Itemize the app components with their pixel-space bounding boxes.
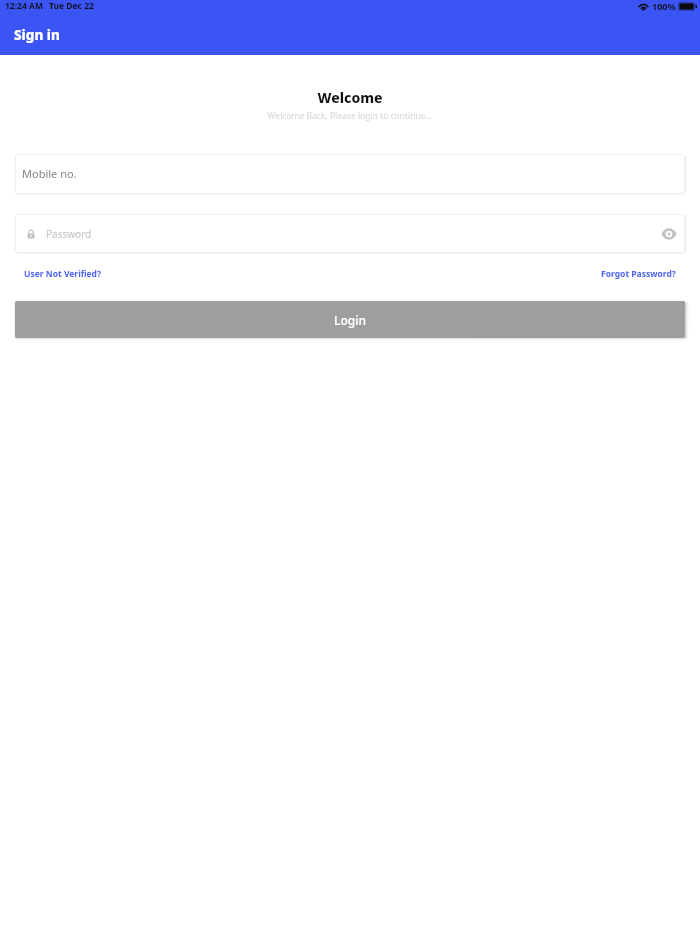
- button[interactable]: Password: [15, 214, 685, 253]
- staticText: Login: [334, 312, 366, 328]
- button[interactable]: Forgot Password?: [594, 267, 683, 281]
- button[interactable]: Show password: [654, 219, 684, 249]
- staticText: Welcome: [0, 88, 700, 107]
- staticText: Tue Dec 22: [49, 0, 94, 12]
- staticText: Password: [46, 227, 92, 241]
- staticText: 12:24 AM: [5, 0, 43, 12]
- button[interactable]: Mobile no.: [15, 154, 685, 194]
- button[interactable]: Login: [15, 301, 685, 338]
- button[interactable]: User Not Verified?: [17, 267, 108, 281]
- staticText: Mobile no.: [22, 166, 77, 181]
- staticText: Sign in: [14, 26, 60, 44]
- staticText: Forgot Password?: [601, 268, 676, 280]
- staticText: 100%: [652, 0, 676, 12]
- staticText: Welcome Back, Please login to continue..…: [0, 110, 700, 122]
- staticText: User Not Verified?: [24, 268, 101, 280]
